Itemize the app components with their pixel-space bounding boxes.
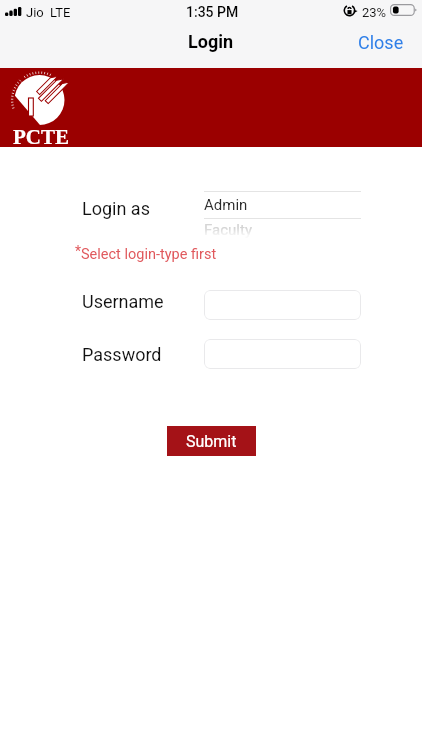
staticText: Faculty — [204, 221, 252, 239]
staticText: 23% — [362, 5, 387, 20]
staticText: Admin — [204, 196, 248, 214]
staticText: LTE — [50, 5, 71, 20]
button[interactable]: Submit — [167, 426, 256, 456]
staticText: Close — [358, 32, 404, 53]
button[interactable]: Password input field — [204, 339, 361, 369]
staticText: Username — [82, 291, 164, 312]
staticText: Login — [188, 31, 234, 52]
staticText: Login as — [82, 198, 150, 219]
staticText: Select login-type first — [81, 246, 217, 263]
staticText: Password — [82, 344, 162, 365]
staticText: PCTE — [13, 125, 70, 147]
staticText: * — [75, 243, 82, 259]
staticText: Jio — [26, 5, 44, 20]
staticText: 1:35 PM — [186, 4, 239, 20]
button[interactable]: Close — [345, 22, 417, 63]
button[interactable]: Username input field — [204, 290, 361, 320]
staticText: Submit — [186, 432, 237, 451]
